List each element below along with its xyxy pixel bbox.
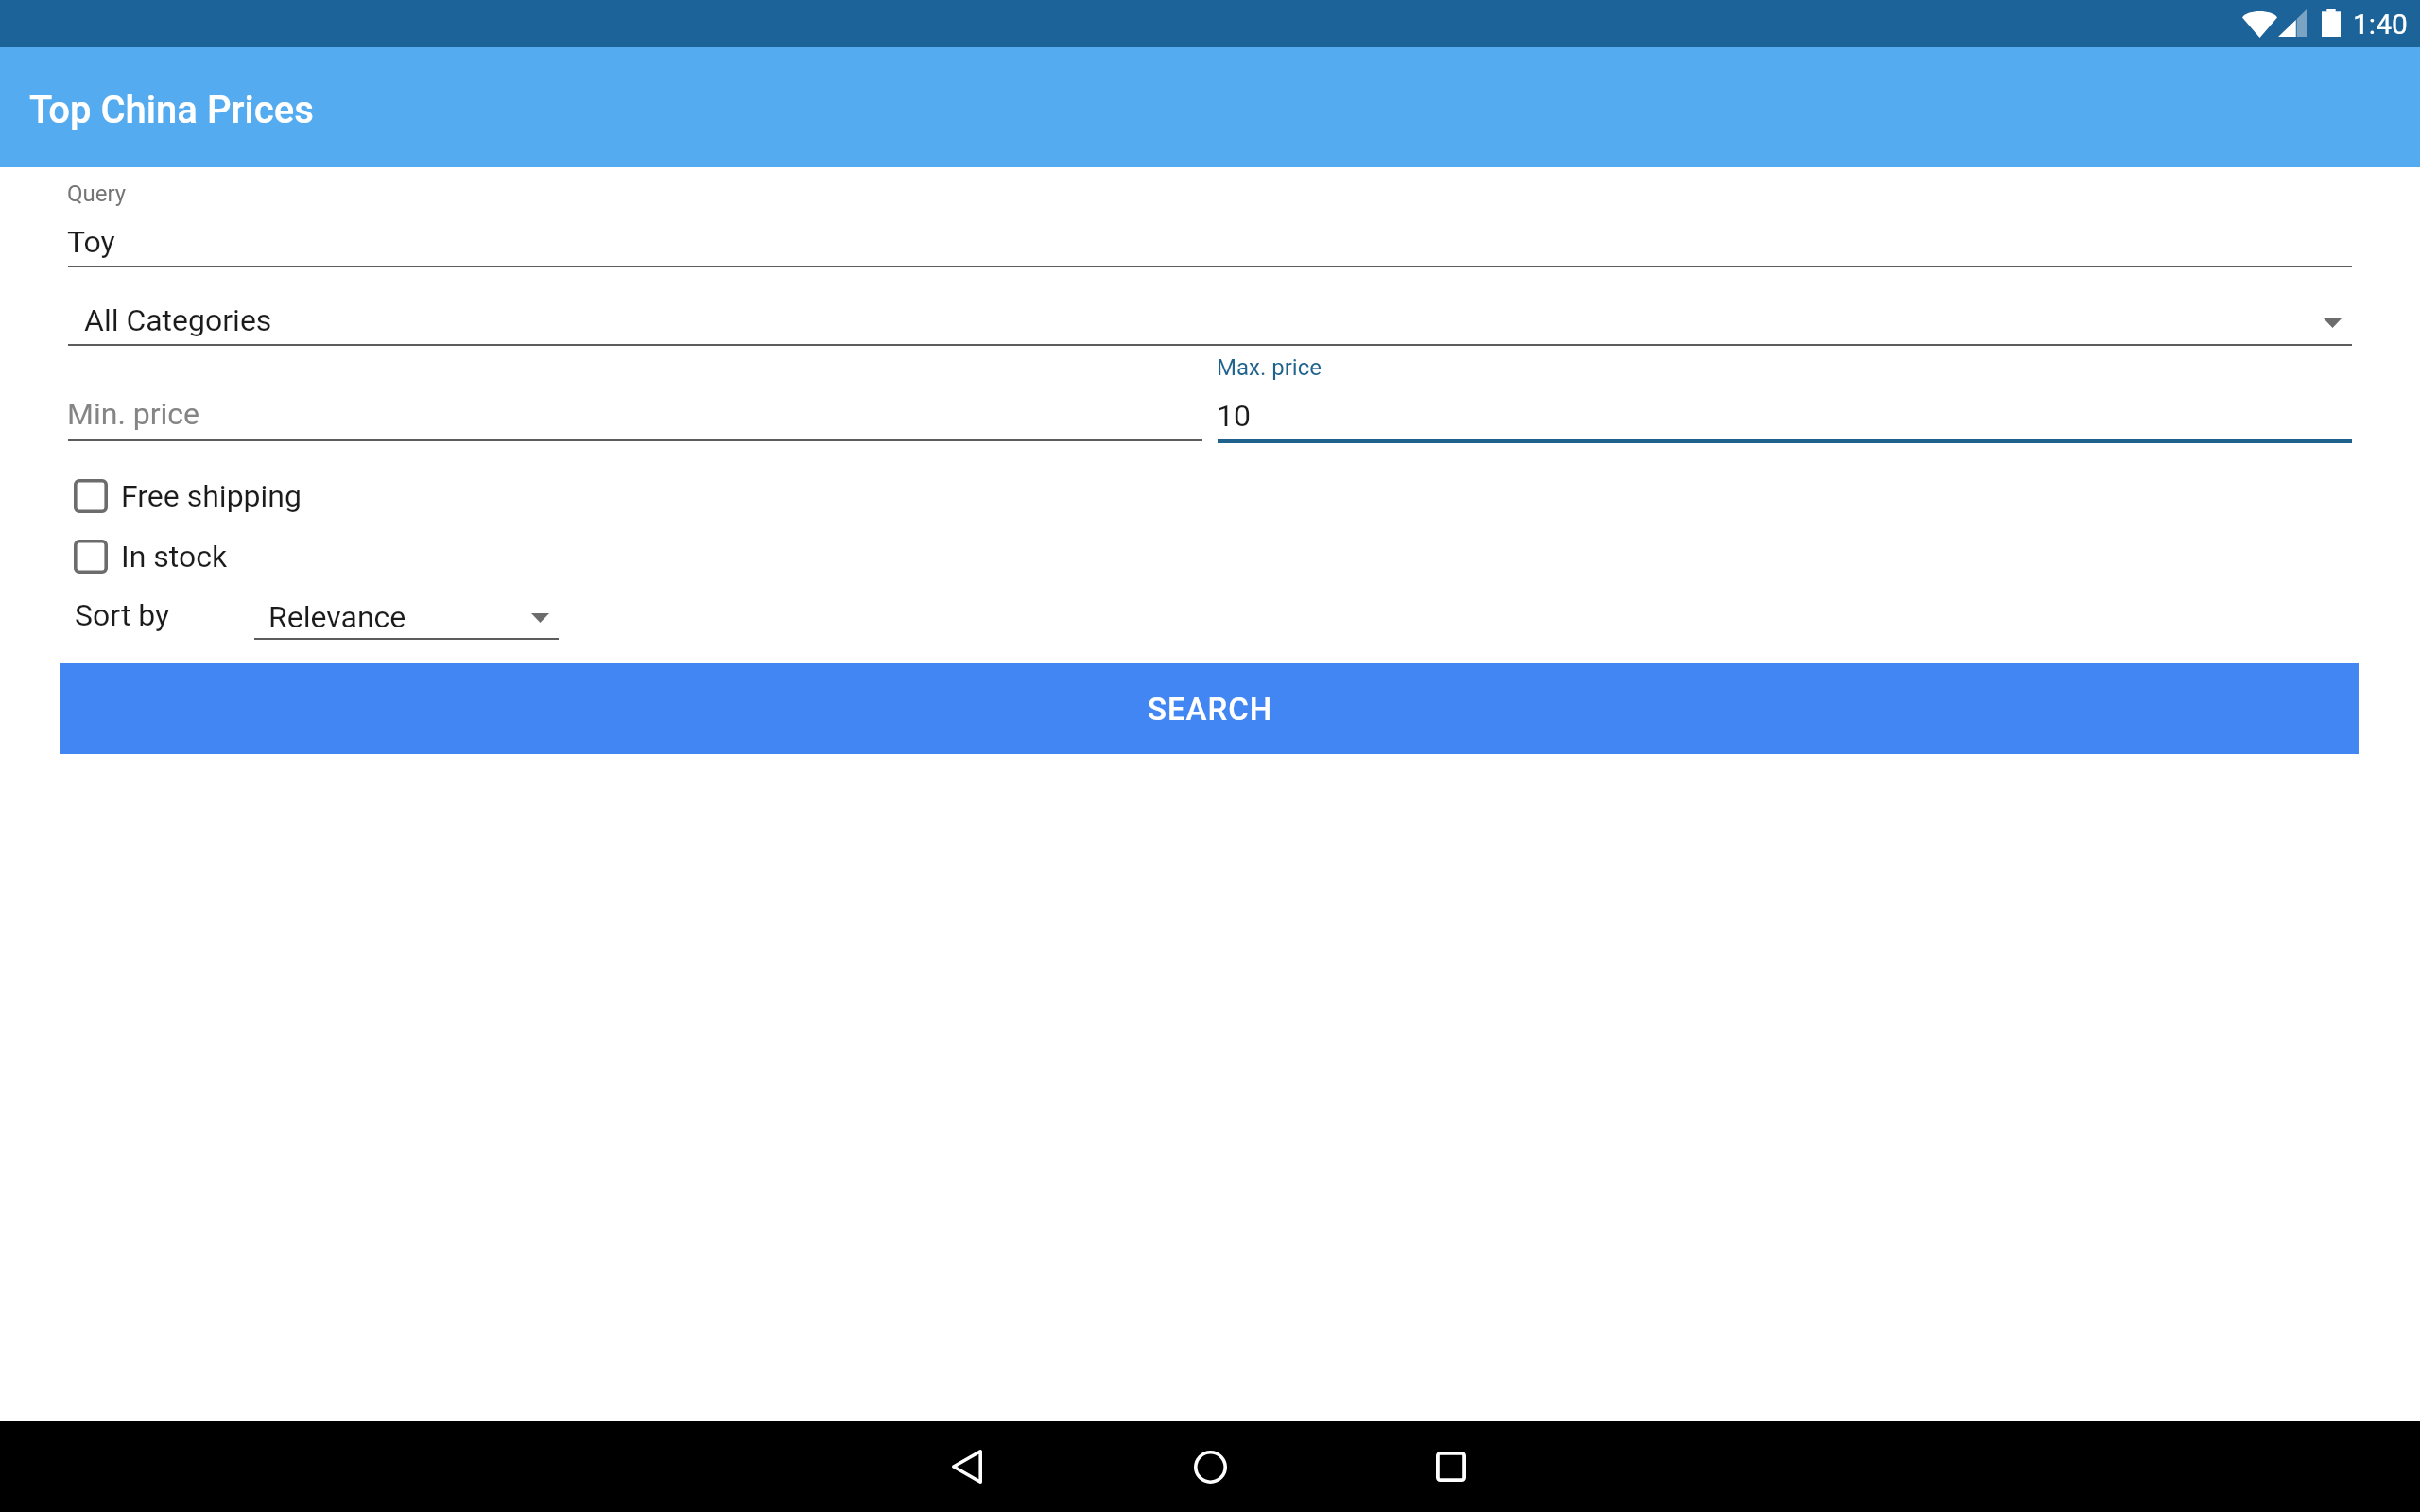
staticText: Min. price xyxy=(67,396,200,432)
button[interactable]: Back xyxy=(910,1421,1024,1512)
button[interactable]: Relevance xyxy=(254,578,559,640)
button[interactable]: All Categories xyxy=(68,283,2352,344)
staticText: 1:40 xyxy=(2353,8,2408,41)
button[interactable]: Query xyxy=(68,175,2352,267)
button[interactable]: In stock xyxy=(57,526,662,587)
button[interactable]: Max. price xyxy=(1218,350,2352,439)
staticText: Query xyxy=(67,180,127,207)
staticText: SEARCH xyxy=(1148,691,1273,728)
button[interactable]: Recents xyxy=(1394,1421,1508,1512)
staticText: In stock xyxy=(121,539,228,575)
button[interactable]: SEARCH xyxy=(60,663,2359,754)
button[interactable]: Min. price xyxy=(68,378,1202,438)
button[interactable]: Home xyxy=(1153,1421,1267,1512)
staticText: Max. price xyxy=(1217,354,1322,381)
staticText: Sort by xyxy=(75,597,170,633)
button[interactable]: Free shipping xyxy=(57,466,662,526)
staticText: 10 xyxy=(1217,398,1251,434)
staticText: Top China Prices xyxy=(29,88,314,132)
staticText: Toy xyxy=(67,224,115,260)
staticText: Free shipping xyxy=(121,478,302,514)
staticText: All Categories xyxy=(84,302,272,338)
staticText: Relevance xyxy=(268,599,406,635)
